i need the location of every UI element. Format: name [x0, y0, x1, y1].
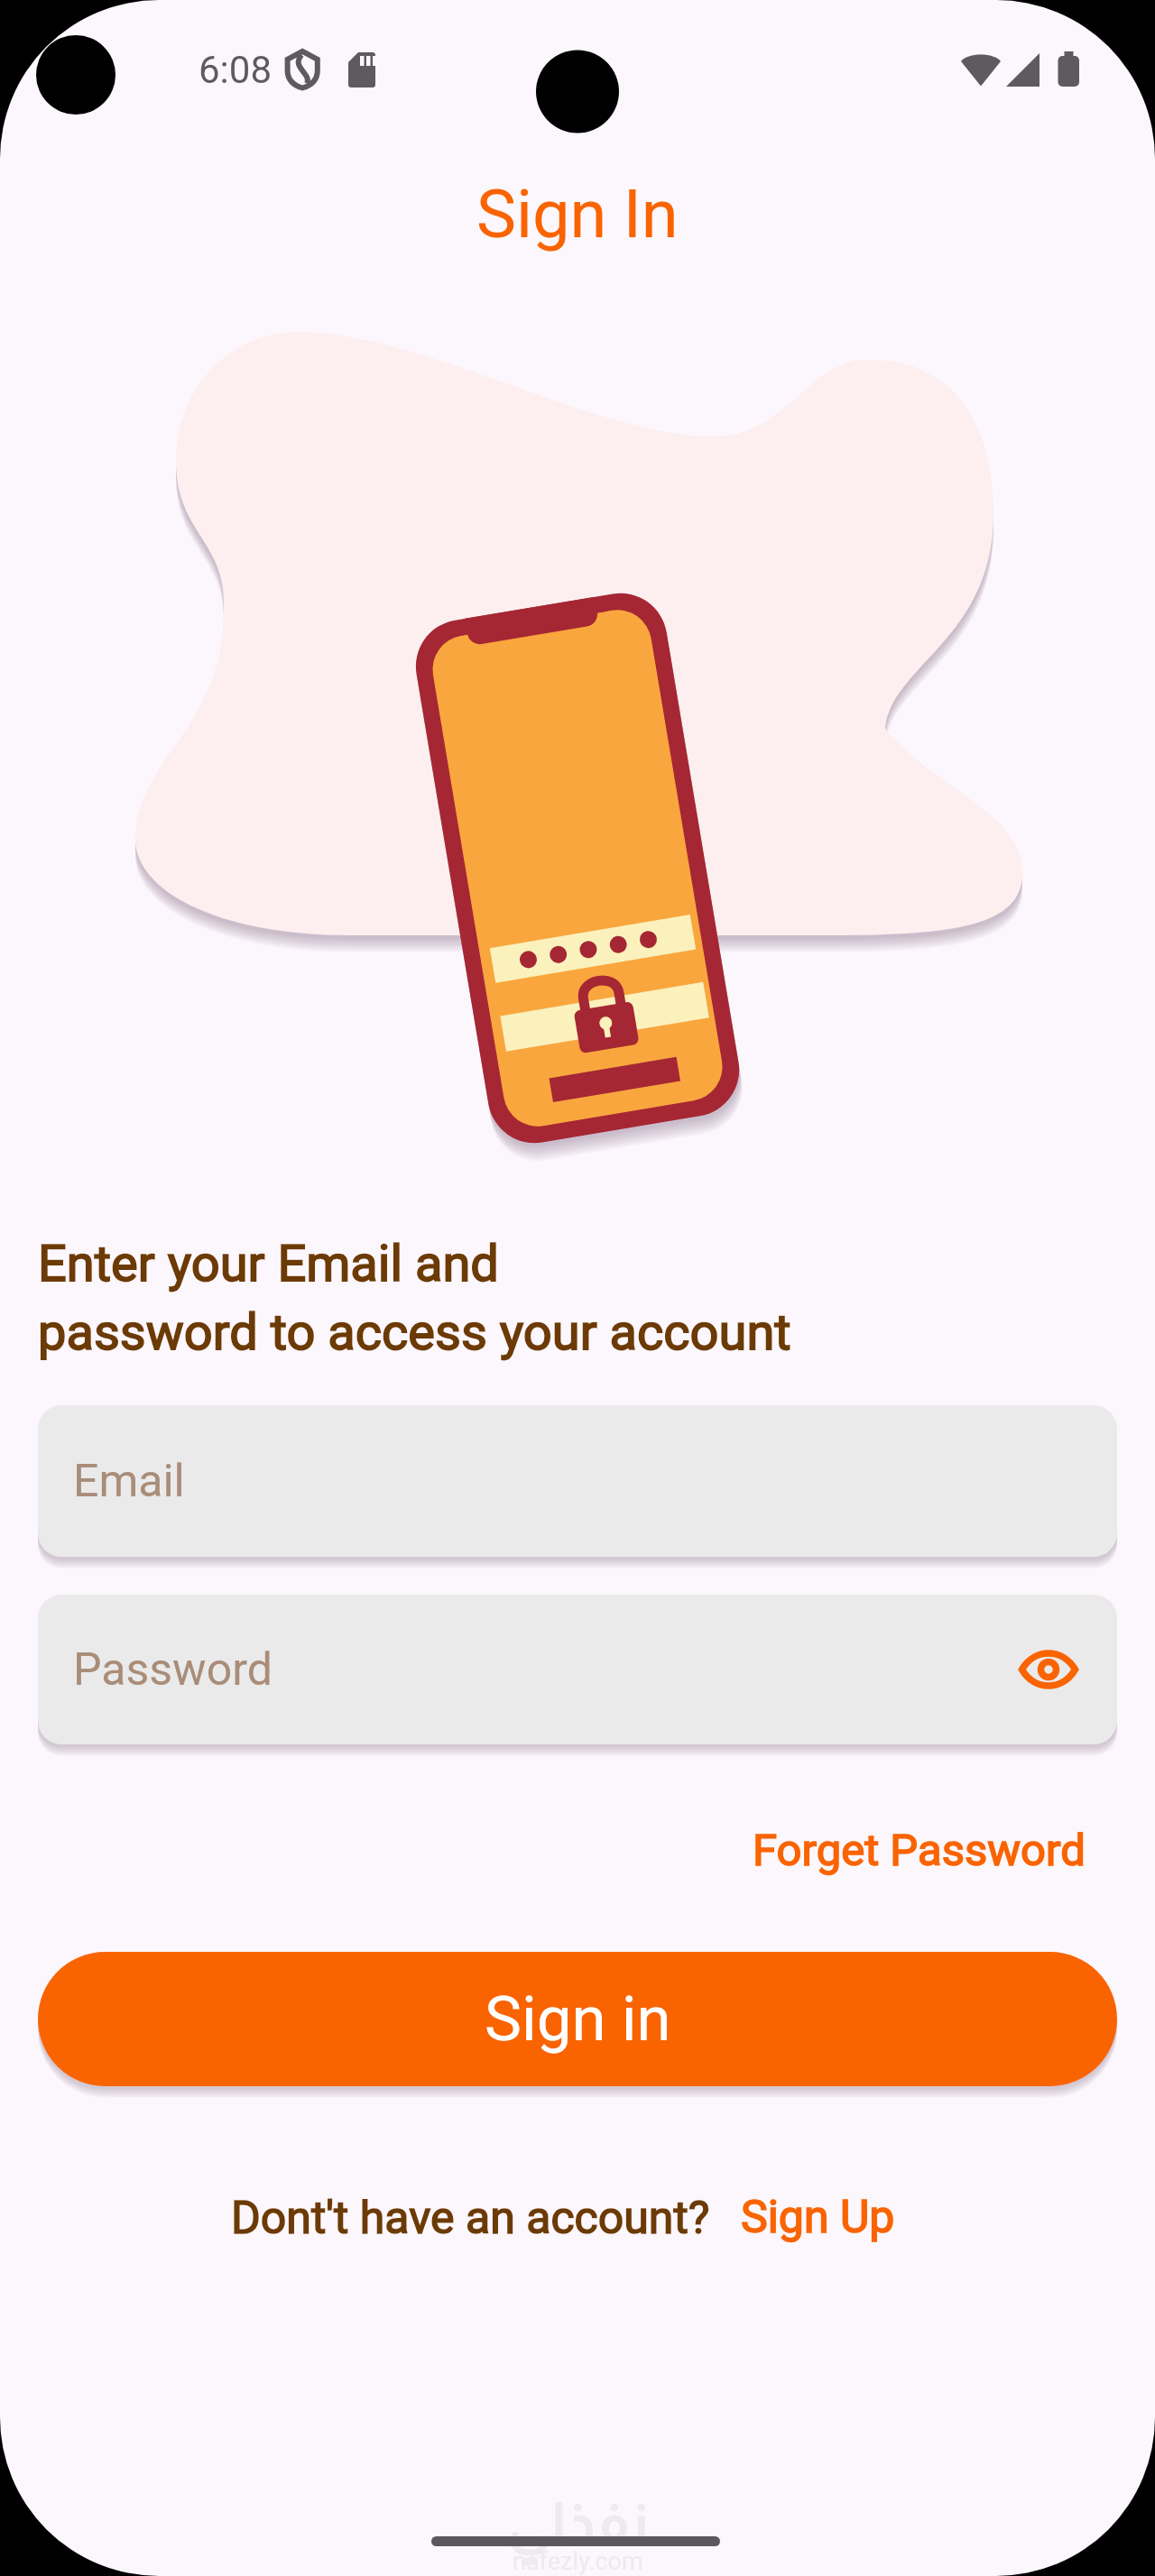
button[interactable]: Sign in	[38, 1952, 1117, 2086]
staticText: Sign In	[476, 175, 679, 253]
staticText: Password	[73, 1643, 273, 1697]
staticText: Sign Up	[741, 2191, 895, 2244]
staticText: Sign in	[485, 1983, 671, 2056]
button[interactable]: Password	[38, 1595, 1117, 1744]
staticText: nafezly.com	[513, 2547, 643, 2576]
button[interactable]: Sign Up	[728, 2180, 908, 2255]
staticText: 6:08	[199, 48, 272, 92]
staticText: نفذلي	[507, 2491, 649, 2553]
button[interactable]: Forget Password	[740, 1814, 1098, 1887]
staticText: Dont't have an account?	[231, 2192, 710, 2245]
staticText: Email	[73, 1455, 185, 1508]
button[interactable]: Email	[38, 1405, 1117, 1557]
staticText: password to access your account	[38, 1302, 791, 1362]
button[interactable]: Show password	[1014, 1635, 1083, 1704]
staticText: Forget Password	[753, 1825, 1086, 1876]
staticText: Enter your Email and	[38, 1234, 499, 1293]
